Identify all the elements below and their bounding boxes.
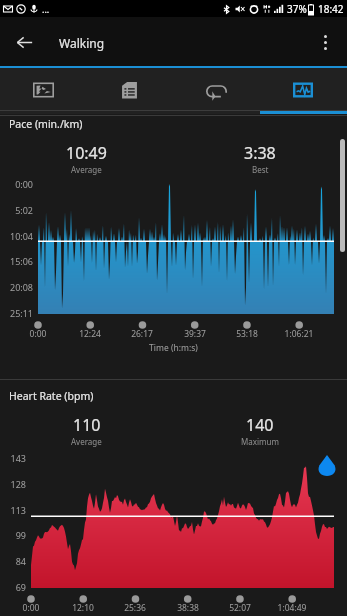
staticText: 140 [246,414,274,436]
staticText: Average [71,164,102,175]
button[interactable]: Laps [173,68,260,114]
staticText: 25:36 [111,602,159,614]
button[interactable]: Navigate up [0,18,48,67]
staticText: Time (h:m:s) [0,342,347,354]
staticText: 113 [0,504,26,516]
button[interactable]: Map [0,68,86,114]
staticText: Walking [59,35,105,51]
staticText: 3:38 [244,142,276,164]
staticText: 143 [0,452,26,464]
button[interactable]: Graphs [260,68,347,114]
staticText: Maximum [241,436,279,447]
staticText: 5:02 [0,204,33,216]
staticText: Pace (min./km) [9,117,83,131]
staticText: 110 [73,414,101,436]
staticText: 12:24 [66,328,114,340]
staticText: 38:38 [164,602,212,614]
button[interactable]: More options [303,18,347,67]
staticText: Heart Rate (bpm) [9,389,94,403]
staticText: 18:42 [318,2,344,16]
staticText: 0:00 [7,602,55,614]
staticText: 37% [287,2,307,16]
staticText: 99 [0,529,26,541]
staticText: 0:00 [0,178,33,190]
staticText: 1:06:21 [275,328,323,340]
staticText: 12:10 [59,602,107,614]
staticText: 69 [0,581,26,593]
staticText: 39:37 [171,328,219,340]
staticText: 15:06 [0,255,33,267]
staticText: 26:17 [118,328,166,340]
staticText: 10:49 [66,142,107,164]
button[interactable]: Details [86,68,173,114]
staticText: 20:08 [0,281,33,293]
staticText: ... [42,3,50,15]
staticText: Average [71,436,102,447]
staticText: Best [252,164,269,175]
staticText: 1:04:49 [268,602,316,614]
staticText: 0:00 [14,328,62,340]
staticText: 84 [0,555,26,567]
staticText: 52:07 [216,602,264,614]
staticText: 128 [0,478,26,490]
staticText: 53:18 [223,328,271,340]
staticText: 25:11 [0,307,33,319]
staticText: 10:04 [0,230,33,242]
